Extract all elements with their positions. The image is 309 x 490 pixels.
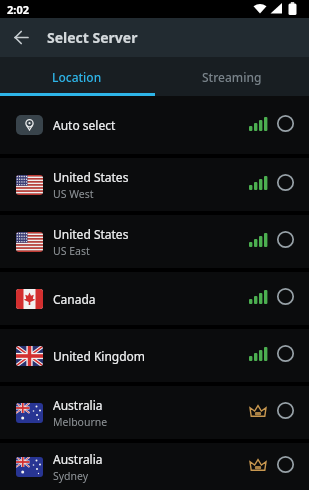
- button[interactable]: United States: [0, 158, 309, 211]
- staticText: Location: [52, 69, 102, 85]
- staticText: US West: [53, 187, 94, 201]
- staticText: Streaming: [202, 69, 262, 85]
- button[interactable]: Canada: [0, 272, 309, 325]
- button[interactable]: Streaming: [154, 57, 309, 96]
- button[interactable]: Auto select: [0, 96, 309, 154]
- staticText: Melbourne: [53, 415, 108, 429]
- staticText: Select Server: [47, 28, 138, 47]
- staticText: US East: [53, 244, 90, 258]
- button[interactable]: Location: [0, 57, 154, 96]
- button[interactable]: United Kingdom: [0, 329, 309, 382]
- button[interactable]: United States: [0, 215, 309, 268]
- staticText: United Kingdom: [53, 348, 146, 364]
- button[interactable]: Australia: [0, 443, 309, 490]
- staticText: United States: [53, 169, 129, 185]
- staticText: Australia: [53, 397, 103, 413]
- staticText: 2:02: [7, 2, 29, 17]
- staticText: Australia: [53, 451, 103, 467]
- button[interactable]: [0, 18, 42, 57]
- staticText: Auto select: [53, 117, 116, 133]
- staticText: Sydney: [53, 469, 89, 483]
- staticText: United States: [53, 226, 129, 242]
- staticText: Canada: [53, 291, 96, 307]
- button[interactable]: Australia: [0, 386, 309, 439]
